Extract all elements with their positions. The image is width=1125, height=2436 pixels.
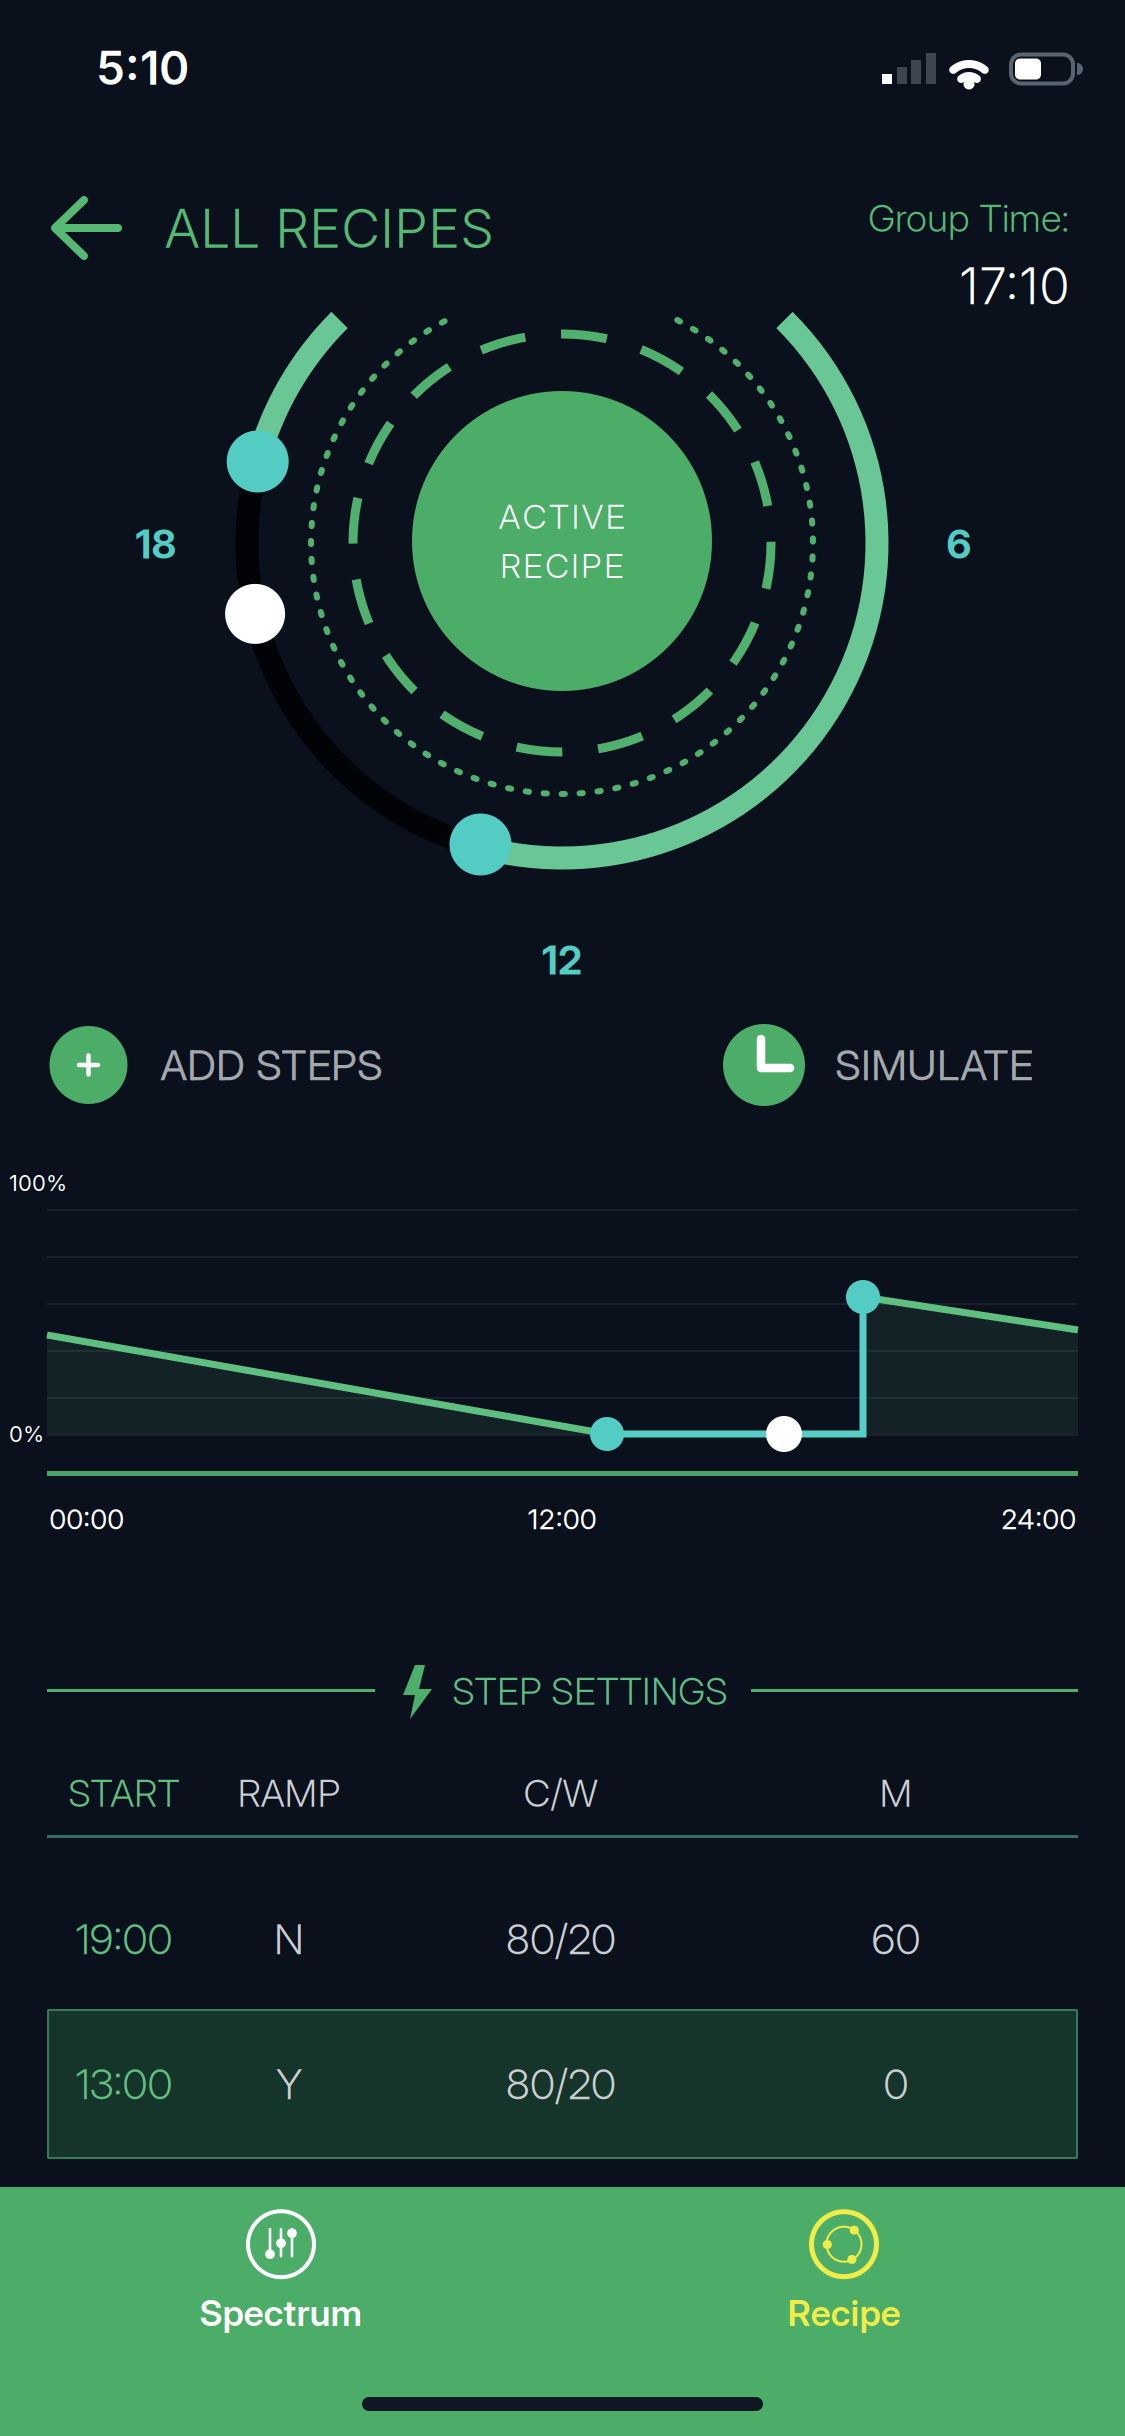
staticText: 17:10 xyxy=(959,256,1070,316)
staticText: 24:00 xyxy=(1001,1502,1076,1536)
button[interactable]: Recipe xyxy=(787,2209,900,2335)
staticText: RAMP xyxy=(237,1770,340,1816)
staticText: 0 xyxy=(883,2059,908,2109)
staticText: R E C I P E xyxy=(500,545,624,586)
staticText: N xyxy=(274,1914,304,1964)
staticText: M xyxy=(879,1770,912,1816)
staticText: 0% xyxy=(9,1421,44,1447)
button[interactable]: SIMULATE xyxy=(723,1020,1125,1110)
staticText: 80/20 xyxy=(506,1914,616,1964)
staticText: 6 xyxy=(946,520,971,568)
staticText: ADD STEPS xyxy=(160,1040,383,1090)
staticText: Y xyxy=(276,2059,302,2109)
staticText: 12:00 xyxy=(527,1502,596,1536)
staticText: 100% xyxy=(9,1170,67,1196)
staticText: A C T I V E xyxy=(498,496,625,537)
staticText: 12 xyxy=(542,936,582,984)
button[interactable]: Active recipe xyxy=(412,391,712,691)
staticText: START xyxy=(68,1770,180,1816)
staticText: 80/20 xyxy=(506,2059,616,2109)
staticText: C/W xyxy=(523,1770,598,1816)
button[interactable]: Back xyxy=(48,194,124,262)
staticText: 00:00 xyxy=(49,1502,124,1536)
staticText: STEP SETTINGS xyxy=(452,1668,728,1714)
staticText: Recipe xyxy=(787,2291,900,2335)
staticText: 13:00 xyxy=(75,2059,172,2109)
button[interactable]: Spectrum xyxy=(199,2209,362,2335)
staticText: 18 xyxy=(135,520,176,568)
button[interactable]: 13:00 xyxy=(47,2009,1078,2159)
staticText: 5:10 xyxy=(96,40,189,96)
button[interactable]: 19:00 xyxy=(47,1864,1078,2014)
staticText: 60 xyxy=(871,1914,920,1964)
staticText: Spectrum xyxy=(199,2291,362,2335)
staticText: Group Time: xyxy=(868,195,1070,241)
button[interactable]: ADD STEPS xyxy=(50,1020,410,1110)
staticText: SIMULATE xyxy=(835,1040,1033,1090)
staticText: ALL RECIPES xyxy=(164,195,494,261)
staticText: 19:00 xyxy=(75,1914,172,1964)
